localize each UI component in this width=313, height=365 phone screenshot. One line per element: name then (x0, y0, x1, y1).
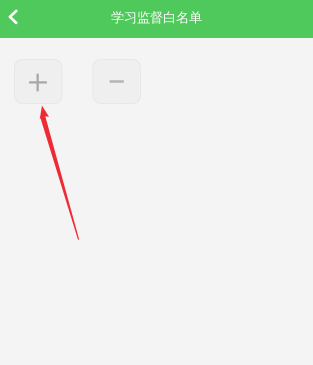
button[interactable]: Add app to whitelist (14, 59, 62, 104)
staticText: 学习监督白名单 (111, 9, 202, 26)
button[interactable]: Back (0, 0, 34, 38)
button[interactable]: Remove app from whitelist (92, 59, 141, 104)
